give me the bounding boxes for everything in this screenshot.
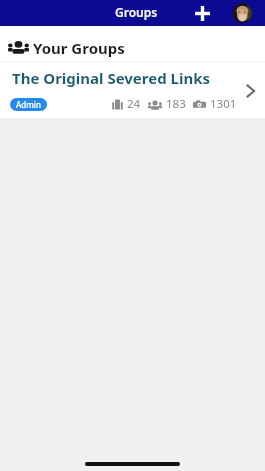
staticText: Groups [115, 4, 158, 20]
button[interactable]: The Original Severed Links [0, 62, 265, 118]
staticText: 1301 [210, 96, 237, 112]
staticText: 183 [166, 96, 186, 112]
button[interactable]: Create group [192, 3, 212, 23]
staticText: The Original Severed Links [12, 68, 211, 88]
staticText: Your Groups [33, 38, 125, 58]
staticText: Admin [16, 99, 41, 110]
staticText: 24 [127, 96, 141, 112]
button[interactable]: Profile [232, 3, 252, 23]
